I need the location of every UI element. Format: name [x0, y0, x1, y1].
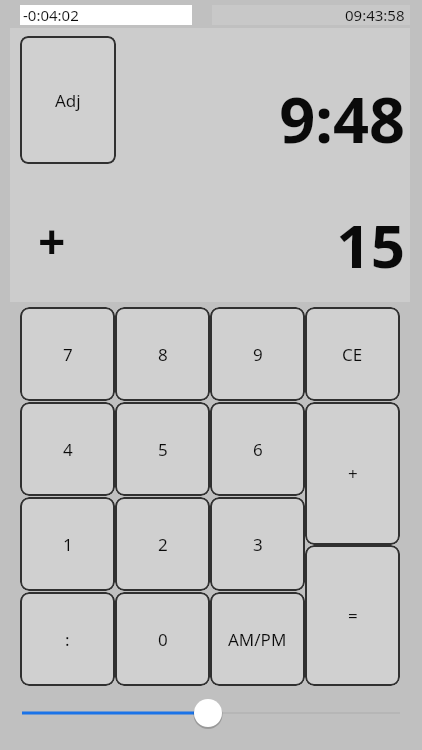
- button[interactable]: -0:04:02: [20, 5, 192, 25]
- button[interactable]: 2: [115, 497, 210, 591]
- staticText: 8: [158, 343, 168, 366]
- staticText: 6: [253, 438, 263, 461]
- staticText: 9: [253, 343, 263, 366]
- button[interactable]: 6: [210, 402, 305, 496]
- staticText: =: [348, 604, 358, 627]
- staticText: 09:43:58: [345, 5, 405, 25]
- staticText: 9:48: [279, 76, 405, 156]
- staticText: -0:04:02: [23, 5, 79, 25]
- button[interactable]: 0: [115, 592, 210, 686]
- button[interactable]: Volume slider: [10, 692, 412, 736]
- button[interactable]: 4: [20, 402, 115, 496]
- button[interactable]: 5: [115, 402, 210, 496]
- button[interactable]: CE: [305, 307, 400, 401]
- staticText: :: [65, 628, 70, 651]
- staticText: 3: [253, 533, 263, 556]
- button[interactable]: AM/PM: [210, 592, 305, 686]
- staticText: +: [38, 208, 66, 272]
- button[interactable]: 09:43:58: [212, 5, 410, 25]
- button[interactable]: 8: [115, 307, 210, 401]
- staticText: 7: [63, 343, 73, 366]
- staticText: 1: [63, 533, 73, 556]
- staticText: 4: [63, 438, 73, 461]
- staticText: +: [348, 462, 358, 485]
- button[interactable]: =: [305, 545, 400, 686]
- button[interactable]: Adj: [20, 36, 116, 164]
- button[interactable]: :: [20, 592, 115, 686]
- staticText: CE: [342, 343, 363, 366]
- button[interactable]: 9: [210, 307, 305, 401]
- staticText: 15: [336, 204, 405, 276]
- button[interactable]: +: [305, 402, 400, 545]
- button[interactable]: 3: [210, 497, 305, 591]
- staticText: 5: [158, 438, 168, 461]
- button[interactable]: 1: [20, 497, 115, 591]
- staticText: 2: [158, 533, 168, 556]
- staticText: 0: [158, 628, 168, 651]
- button[interactable]: 7: [20, 307, 115, 401]
- staticText: Adj: [55, 89, 81, 112]
- staticText: AM/PM: [228, 628, 287, 651]
